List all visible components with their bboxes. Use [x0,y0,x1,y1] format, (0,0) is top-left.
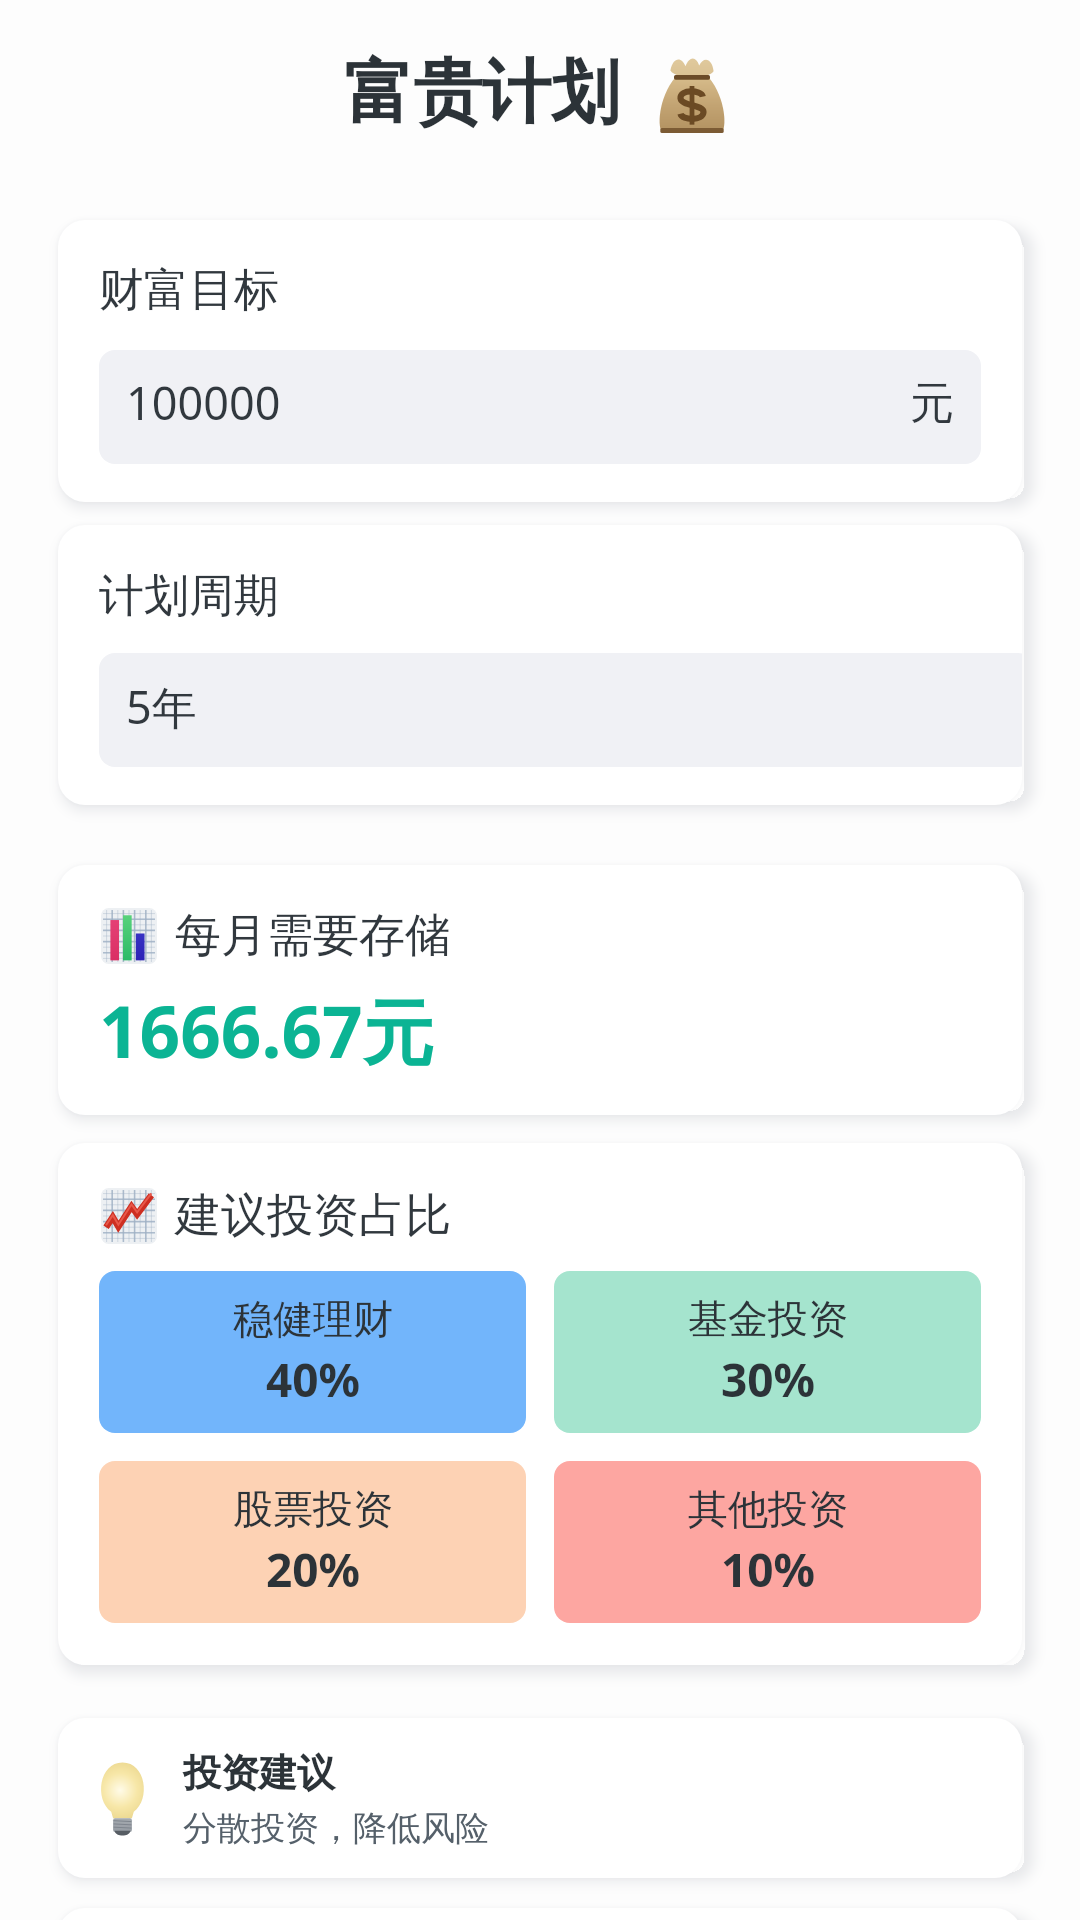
staticText: 5年 [126,676,197,737]
staticText: 10% [721,1538,816,1601]
staticText: 基金投资 [688,1294,848,1344]
staticText: 40% [266,1348,361,1411]
staticText: 100000 [126,372,281,433]
staticText: 计划周期 [99,568,279,625]
button[interactable]: Tip [58,1718,1022,1878]
staticText: 元 [910,376,954,431]
staticText: 分散投资，降低风险 [183,1807,489,1850]
button[interactable]: 股票投资 20% [99,1461,526,1623]
staticText: 30% [721,1348,816,1411]
other: Trending up [99,1181,158,1251]
other: Money bag [656,52,728,136]
other: Bar chart [99,901,158,971]
staticText: 1666.67元 [99,982,434,1078]
staticText: 其他投资 [688,1484,848,1534]
staticText: 股票投资 [233,1484,393,1534]
staticText: 20% [266,1538,361,1601]
button[interactable]: 基金投资 30% [554,1271,981,1433]
staticText: 稳健理财 [233,1294,393,1344]
button[interactable]: 稳健理财 40% [99,1271,526,1433]
button[interactable]: 100000 [99,350,981,464]
button[interactable]: 富贵计划 [344,50,737,137]
other: Tip [99,1761,146,1838]
staticText: 富贵计划 [344,50,620,137]
button[interactable]: 5年 [99,653,1022,767]
staticText: 投资建议 [183,1749,335,1797]
staticText: 财富目标 [99,262,279,319]
staticText: 建议投资占比 [175,1187,451,1245]
staticText: 每月需要存储 [175,907,451,965]
button[interactable]: 其他投资 10% [554,1461,981,1623]
